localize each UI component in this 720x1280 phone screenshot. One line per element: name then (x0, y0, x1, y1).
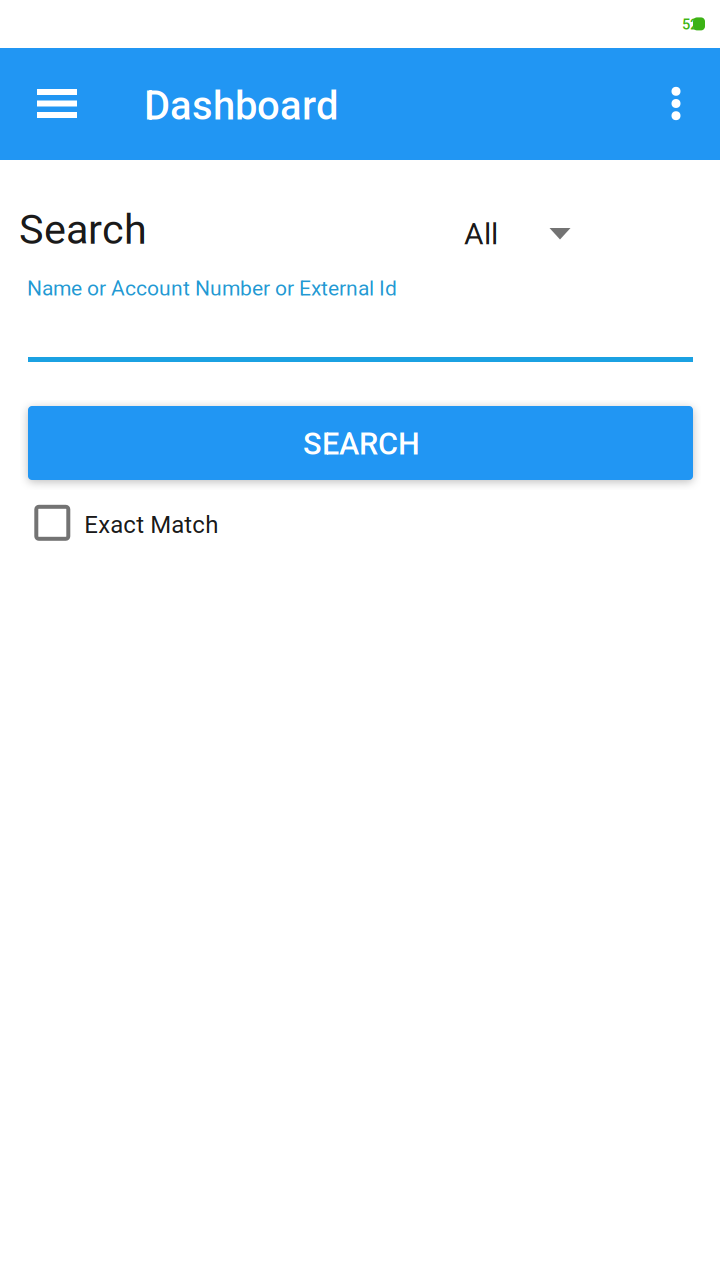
button[interactable]: All (450, 207, 600, 263)
staticText: Search (19, 205, 147, 254)
button[interactable]: Name or Account Number or External Id (28, 270, 693, 362)
button[interactable]: SEARCH (28, 406, 693, 480)
button[interactable]: Exact Match (34, 501, 219, 545)
staticText: Dashboard (144, 82, 339, 129)
staticText: Exact Match (84, 511, 218, 539)
staticText: SEARCH (303, 426, 420, 462)
button[interactable]: More options (644, 47, 708, 159)
staticText: Name or Account Number or External Id (27, 276, 397, 301)
staticText: All (464, 216, 498, 252)
button[interactable]: Open navigation menu (19, 47, 94, 159)
staticText: 52 (682, 16, 698, 33)
